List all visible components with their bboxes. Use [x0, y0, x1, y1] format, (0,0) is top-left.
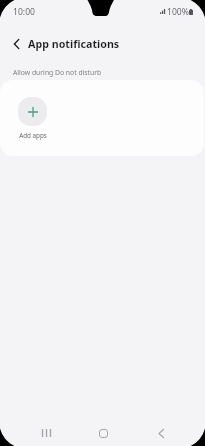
- staticText: App notifications: [28, 37, 120, 52]
- staticText: Allow during Do not disturb: [13, 68, 102, 77]
- button[interactable]: Home: [91, 421, 115, 445]
- staticText: 100%: [167, 6, 189, 18]
- button[interactable]: Recents: [34, 421, 58, 445]
- button[interactable]: Back: [4, 31, 29, 56]
- button[interactable]: Back: [149, 421, 173, 445]
- button[interactable]: Add apps: [11, 97, 54, 140]
- staticText: Add apps: [19, 131, 47, 140]
- staticText: 10:00: [13, 6, 35, 18]
